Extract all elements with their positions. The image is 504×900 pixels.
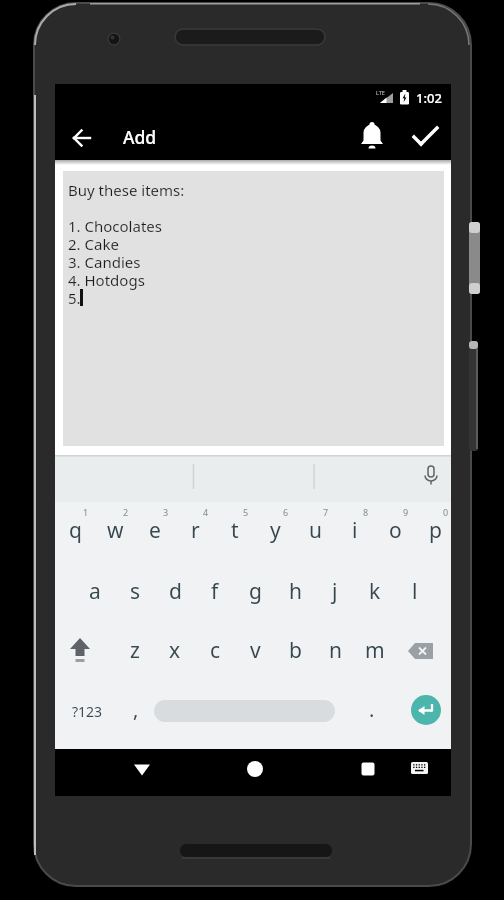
- button[interactable]: u: [295, 513, 335, 547]
- staticText: 6: [283, 506, 289, 518]
- button[interactable]: c: [195, 633, 235, 667]
- staticText: x: [169, 636, 181, 665]
- staticText: 9: [403, 506, 409, 518]
- staticText: y: [270, 516, 281, 545]
- button[interactable]: ,: [126, 694, 146, 724]
- button[interactable]: ?123: [65, 698, 109, 724]
- button[interactable]: b: [275, 633, 315, 667]
- button[interactable]: o: [375, 513, 415, 547]
- button[interactable]: .: [362, 694, 382, 724]
- button[interactable]: [154, 700, 335, 722]
- button[interactable]: w: [95, 513, 135, 547]
- staticText: r: [191, 516, 200, 545]
- staticText: j: [332, 577, 338, 606]
- button[interactable]: [62, 632, 98, 668]
- button[interactable]: [405, 754, 433, 782]
- staticText: 7: [323, 506, 329, 518]
- staticText: b: [289, 636, 302, 665]
- button[interactable]: a: [75, 574, 115, 608]
- staticText: ,: [133, 696, 139, 723]
- staticText: 2: [123, 506, 129, 518]
- staticText: g: [249, 577, 262, 606]
- staticText: m: [365, 636, 385, 665]
- staticText: 1: [83, 506, 89, 518]
- staticText: 1:02: [416, 89, 442, 107]
- staticText: 4: [203, 506, 209, 518]
- button[interactable]: e: [135, 513, 175, 547]
- button[interactable]: k: [355, 574, 395, 608]
- button[interactable]: n: [315, 633, 355, 667]
- staticText: w: [107, 516, 124, 545]
- button[interactable]: s: [115, 574, 155, 608]
- staticText: n: [329, 636, 342, 665]
- button[interactable]: m: [355, 633, 395, 667]
- staticText: .: [369, 696, 375, 723]
- button[interactable]: y: [255, 513, 295, 547]
- button[interactable]: [411, 695, 441, 725]
- button[interactable]: Buy these items: 1. Chocolates 2. Cake 3…: [63, 171, 444, 446]
- button[interactable]: [239, 753, 271, 785]
- staticText: a: [89, 577, 101, 606]
- staticText: f: [211, 577, 219, 606]
- staticText: o: [389, 516, 402, 545]
- button[interactable]: [403, 635, 439, 667]
- button[interactable]: [126, 754, 158, 786]
- staticText: v: [250, 636, 261, 665]
- staticText: k: [369, 577, 381, 606]
- staticText: s: [130, 577, 141, 606]
- button[interactable]: [352, 753, 384, 785]
- button[interactable]: j: [315, 574, 355, 608]
- button[interactable]: [55, 455, 451, 502]
- staticText: 5: [243, 506, 249, 518]
- button[interactable]: v: [235, 633, 275, 667]
- button[interactable]: [68, 124, 96, 152]
- button[interactable]: [357, 120, 387, 152]
- staticText: Buy these items: 1. Chocolates 2. Cake 3…: [68, 180, 185, 308]
- staticText: u: [309, 516, 322, 545]
- staticText: i: [352, 516, 358, 545]
- staticText: h: [289, 577, 302, 606]
- staticText: c: [210, 636, 221, 665]
- staticText: 8: [363, 506, 369, 518]
- button[interactable]: f: [195, 574, 235, 608]
- staticText: ?123: [72, 702, 103, 721]
- staticText: d: [169, 577, 182, 606]
- staticText: t: [231, 516, 239, 545]
- button[interactable]: z: [115, 633, 155, 667]
- staticText: Add: [123, 125, 157, 149]
- button[interactable]: t: [215, 513, 255, 547]
- staticText: e: [149, 516, 161, 545]
- staticText: LTE: [376, 89, 385, 96]
- staticText: z: [130, 636, 140, 665]
- button[interactable]: d: [155, 574, 195, 608]
- button[interactable]: x: [155, 633, 195, 667]
- staticText: 0: [443, 506, 449, 518]
- button[interactable]: [411, 122, 441, 150]
- button[interactable]: r: [175, 513, 215, 547]
- staticText: p: [429, 516, 442, 545]
- button[interactable]: i: [335, 513, 375, 547]
- button[interactable]: l: [395, 574, 435, 608]
- staticText: 3: [163, 506, 169, 518]
- button[interactable]: q: [55, 513, 95, 547]
- button[interactable]: g: [235, 574, 275, 608]
- staticText: l: [412, 577, 418, 606]
- button[interactable]: Add: [123, 122, 203, 152]
- button[interactable]: h: [275, 574, 315, 608]
- button[interactable]: p: [415, 513, 455, 547]
- staticText: q: [69, 516, 82, 545]
